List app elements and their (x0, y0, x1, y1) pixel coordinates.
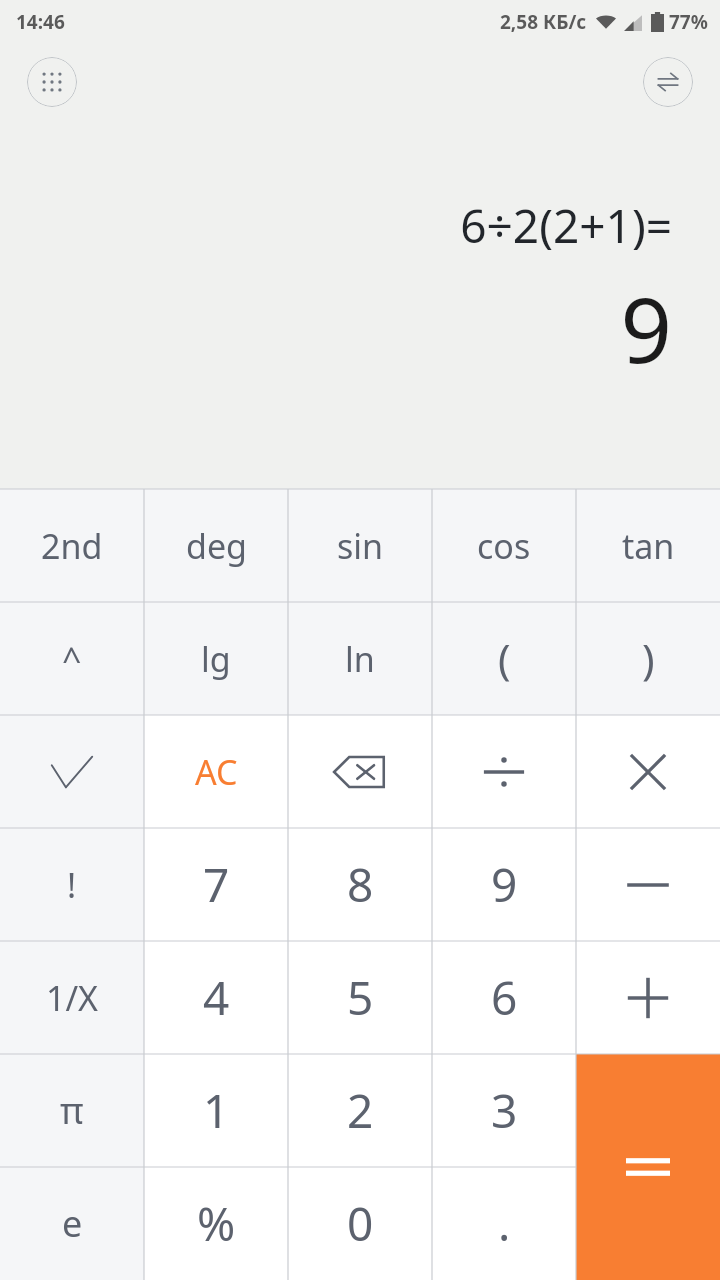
button[interactable]: ) (576, 602, 720, 715)
button[interactable]: 7 (144, 828, 288, 941)
staticText: 1/X (46, 975, 99, 1021)
button[interactable]: 6 (432, 941, 576, 1054)
button[interactable]: 2nd (0, 489, 144, 602)
button[interactable]: Equals (576, 1054, 720, 1167)
button[interactable]: Apps (27, 57, 77, 107)
staticText: % (197, 1192, 236, 1255)
button[interactable]: deg (144, 489, 288, 602)
staticText: ! (67, 862, 77, 908)
staticText: AC (195, 749, 238, 795)
staticText: 2,58 КБ/c (500, 9, 587, 35)
staticText: deg (186, 523, 247, 569)
button[interactable]: 3 (432, 1054, 576, 1167)
staticText: ^ (62, 636, 82, 682)
staticText: 14:46 (16, 9, 65, 35)
button[interactable]: lg (144, 602, 288, 715)
staticText: 2 (347, 1079, 374, 1142)
button[interactable]: . (432, 1167, 576, 1280)
button[interactable]: Backspace (288, 715, 432, 828)
button[interactable]: ( (432, 602, 576, 715)
staticText: 9 (491, 853, 518, 916)
staticText: 4 (203, 966, 230, 1029)
button[interactable]: cos (432, 489, 576, 602)
button[interactable]: ln (288, 602, 432, 715)
button[interactable]: Square root (0, 715, 144, 828)
button[interactable]: % (144, 1167, 288, 1280)
staticText: tan (622, 523, 675, 569)
button[interactable]: AC (144, 715, 288, 828)
staticText: . (498, 1192, 511, 1255)
staticText: 6÷2(2+1)= (460, 194, 672, 257)
button[interactable]: tan (576, 489, 720, 602)
staticText: 77% (669, 9, 708, 35)
button[interactable]: 9 (432, 828, 576, 941)
staticText: 6 (491, 966, 518, 1029)
staticText: 8 (347, 853, 374, 916)
staticText: 5 (347, 966, 374, 1029)
button[interactable]: π (0, 1054, 144, 1167)
button[interactable]: 1 (144, 1054, 288, 1167)
button[interactable]: sin (288, 489, 432, 602)
staticText: lg (201, 636, 231, 682)
staticText: ) (642, 630, 655, 687)
staticText: cos (477, 523, 531, 569)
staticText: 7 (203, 853, 230, 916)
button[interactable]: Swap (643, 57, 693, 107)
button[interactable]: 4 (144, 941, 288, 1054)
button[interactable]: Plus (576, 941, 720, 1054)
staticText: sin (337, 523, 384, 569)
staticText: ln (345, 636, 375, 682)
button[interactable]: ! (0, 828, 144, 941)
staticText: 2nd (41, 523, 103, 569)
button[interactable]: ^ (0, 602, 144, 715)
staticText: 0 (347, 1192, 374, 1255)
staticText: ( (498, 630, 511, 687)
button[interactable]: 5 (288, 941, 432, 1054)
button[interactable]: 2 (288, 1054, 432, 1167)
staticText: 3 (491, 1079, 518, 1142)
staticText: 9 (620, 267, 672, 390)
button[interactable]: 1/X (0, 941, 144, 1054)
staticText: e (62, 1199, 83, 1248)
button[interactable]: e (0, 1167, 144, 1280)
staticText: π (60, 1086, 84, 1135)
button[interactable]: Equals (576, 1054, 720, 1280)
staticText: 1 (203, 1079, 230, 1142)
button[interactable]: Multiply (576, 715, 720, 828)
button[interactable]: Minus (576, 828, 720, 941)
button[interactable]: Divide (432, 715, 576, 828)
button[interactable]: 8 (288, 828, 432, 941)
button[interactable]: 0 (288, 1167, 432, 1280)
